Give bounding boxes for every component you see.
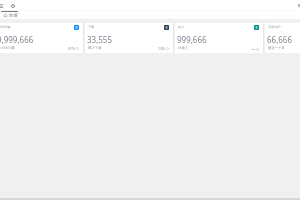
staticText: 9,999,666 (0, 34, 34, 45)
staticText: 下载 (88, 25, 95, 29)
staticText: 总访问量 (0, 25, 11, 29)
button[interactable]: Menu (0, 4, 3, 8)
button[interactable]: 下载 (85, 23, 173, 53)
staticText: 最近一个月 (268, 46, 285, 50)
button[interactable]: 总访问量 (0, 23, 83, 53)
button[interactable]: 百度 (0, 12, 17, 19)
staticText: 999,666 (177, 34, 207, 45)
staticText: 收入 (178, 25, 185, 29)
staticText: 66,666 (267, 34, 293, 45)
staticText: 33,555 (87, 34, 113, 45)
staticText: 活跃用户 (268, 25, 281, 29)
staticText: 累计下载 (88, 46, 102, 50)
staticText: 13% (158, 46, 165, 51)
staticText: 总收入 (178, 46, 189, 50)
staticText: 今日访问量 (0, 46, 15, 50)
button[interactable]: History (11, 4, 15, 8)
button[interactable]: 活跃用户 (265, 23, 300, 53)
staticText: 41% (68, 46, 75, 51)
button[interactable]: 收入 (175, 23, 263, 53)
staticText: 百度 (9, 13, 18, 19)
